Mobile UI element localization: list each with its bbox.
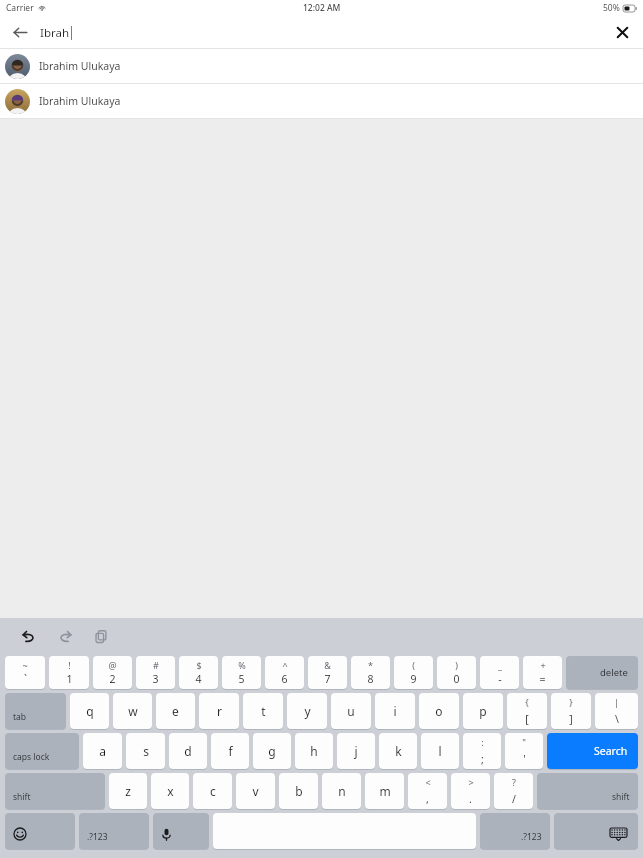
button[interactable]: " [505,733,543,769]
staticText: t [261,703,266,719]
button[interactable]: Redo [48,619,82,653]
staticText: r [217,703,222,719]
button[interactable]: v [236,773,275,809]
button[interactable]: n [322,773,361,809]
button[interactable]: < [408,773,447,809]
button[interactable]: delete [566,656,638,689]
button[interactable]: Undo [12,619,46,653]
button[interactable]: tab [5,693,66,729]
staticText: g [268,743,276,759]
button[interactable]: caps lock [5,733,79,769]
button[interactable]: { [507,693,547,729]
button[interactable]: % [222,656,261,689]
staticText: ( [412,659,415,671]
staticText: e [172,703,179,719]
button[interactable]: b [279,773,318,809]
button[interactable]: ) [437,656,476,689]
button[interactable]: k [379,733,417,769]
button[interactable]: # [136,656,175,689]
button[interactable]: t [243,693,283,729]
button[interactable]: * [351,656,390,689]
button[interactable]: @ [93,656,132,689]
button[interactable]: > [451,773,490,809]
button[interactable]: Voice input [153,813,209,849]
staticText: Carrier [6,2,34,14]
button[interactable]: o [419,693,459,729]
button[interactable]: l [421,733,459,769]
button[interactable]: Hide keyboard [554,813,638,849]
button[interactable]: s [126,733,165,769]
button[interactable]: & [308,656,347,689]
staticText: [ [525,712,529,726]
staticText: ] [569,712,573,726]
button[interactable]: z [109,773,147,809]
button[interactable]: $ [179,656,218,689]
button[interactable]: Back [0,16,40,49]
button[interactable]: Search [547,733,638,769]
staticText: y [304,703,311,719]
staticText: delete [600,666,628,679]
staticText: h [310,743,318,759]
button[interactable]: } [551,693,591,729]
button[interactable]: Clear search [601,16,643,49]
staticText: caps lock [13,751,50,763]
button[interactable]: q [70,693,109,729]
staticText: s [143,743,149,759]
staticText: @ [108,659,117,671]
button[interactable]: shift [537,773,638,809]
staticText: .?123 [87,831,108,843]
button[interactable]: e [156,693,195,729]
button[interactable]: .?123 [79,813,149,849]
button[interactable]: a [83,733,122,769]
button[interactable]: p [463,693,503,729]
staticText: < [425,776,431,788]
button[interactable]: w [113,693,152,729]
button[interactable]: d [169,733,207,769]
staticText: b [295,783,303,799]
button[interactable]: shift [5,773,105,809]
staticText: ~ [22,659,28,671]
button[interactable]: Ibrahim Ulukaya [0,49,643,83]
staticText: % [238,659,246,671]
button[interactable]: : [463,733,501,769]
button[interactable]: Emoji [5,813,75,849]
button[interactable]: j [337,733,375,769]
staticText: } [569,696,573,708]
staticText: ' [523,752,526,766]
staticText: n [338,783,346,799]
staticText: $ [196,659,202,671]
button[interactable]: | [595,693,638,729]
button[interactable]: ~ [5,656,45,689]
staticText: 6 [281,672,288,686]
staticText: # [153,659,159,671]
staticText: 4 [195,672,202,686]
button[interactable]: f [211,733,249,769]
button[interactable]: Paste [84,619,118,653]
staticText: * [368,659,373,671]
button[interactable]: y [287,693,327,729]
button[interactable]: ^ [265,656,304,689]
staticText: shift [13,791,31,803]
button[interactable]: .?123 [480,813,550,849]
button[interactable]: ? [494,773,533,809]
button[interactable]: g [253,733,291,769]
button[interactable]: ! [49,656,89,689]
staticText: Ibrahim Ulukaya [39,94,121,108]
staticText: { [525,696,529,708]
staticText: - [498,672,502,686]
button[interactable]: u [331,693,371,729]
button[interactable]: ( [394,656,433,689]
button[interactable]: _ [480,656,519,689]
staticText: Ibrahim Ulukaya [39,59,121,73]
button[interactable]: x [151,773,189,809]
button[interactable]: c [193,773,232,809]
button[interactable]: h [295,733,333,769]
button[interactable]: + [523,656,562,689]
button[interactable]: Ibrahim Ulukaya [0,84,643,118]
button[interactable]: r [199,693,239,729]
staticText: j [354,743,358,759]
button[interactable]: i [375,693,415,729]
staticText: tab [13,711,27,723]
button[interactable]: m [365,773,404,809]
